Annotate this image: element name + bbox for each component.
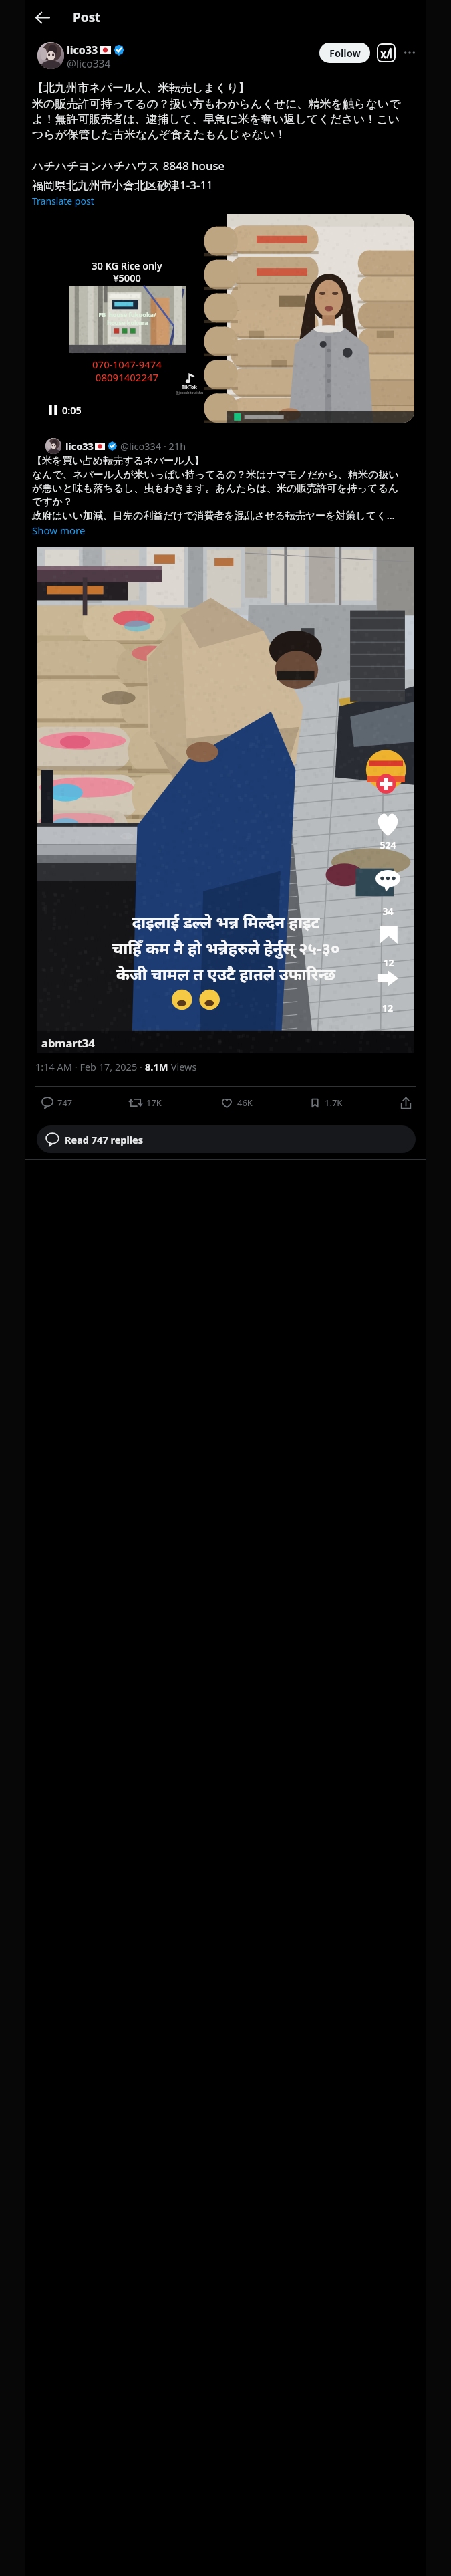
staticText: 070-1047-9474	[60, 358, 194, 371]
staticText: 524	[365, 839, 411, 851]
button[interactable]: Share	[393, 1090, 418, 1115]
staticText: 34	[365, 905, 411, 918]
button[interactable]: Reply	[39, 1090, 76, 1115]
button[interactable]: Back	[27, 3, 57, 32]
staticText: ¥5000	[60, 271, 194, 284]
staticText: Follow	[329, 46, 361, 60]
staticText: 17K	[146, 1097, 162, 1109]
button[interactable]: Like	[218, 1090, 255, 1115]
staticText: abmart34	[41, 1035, 95, 1050]
button[interactable]: Follow	[319, 43, 370, 63]
button[interactable]: More options	[401, 44, 418, 62]
staticText: Translate post	[32, 195, 94, 207]
button[interactable]: Repost	[126, 1090, 164, 1115]
staticText: 30 KG Rice only	[60, 259, 194, 272]
staticText: 【北九州市ネパール人、米転売しまくり】 米の販売許可持ってるの？扱い方もわからん…	[32, 81, 406, 142]
button[interactable]: Post image	[37, 547, 414, 1053]
staticText: FB house fukuoka/	[98, 310, 156, 318]
button[interactable]: Profile photo	[45, 438, 61, 454]
staticText: Read 747 replies	[65, 1133, 144, 1146]
button[interactable]: Read 747 replies	[37, 1125, 416, 1153]
staticText: 12	[368, 956, 409, 969]
staticText: Show more	[32, 524, 86, 537]
staticText: 46K	[237, 1097, 253, 1109]
staticText: 08091402247	[60, 370, 194, 384]
staticText: दाइलाई डल्ले भन्न मिल्दैन हाइट चाहिँ कम …	[47, 911, 405, 985]
button[interactable]: Grok	[377, 43, 396, 62]
staticText: 0:05	[62, 403, 82, 417]
button[interactable]: Bookmark	[307, 1090, 345, 1115]
staticText: 747	[57, 1097, 73, 1109]
button[interactable]: Profile photo	[37, 42, 64, 69]
staticText: Views	[168, 1060, 197, 1073]
staticText: @lico334 · 21h	[120, 439, 186, 453]
button[interactable]: Translate post	[32, 195, 94, 207]
staticText: 8.1M	[145, 1060, 168, 1073]
staticText: 1:14 AM · Feb 17, 2025 ·	[35, 1060, 145, 1073]
button[interactable]: Video	[37, 214, 414, 423]
staticText: lico33	[67, 43, 98, 58]
staticText: Post	[73, 9, 101, 26]
staticText: @lico334	[67, 56, 111, 70]
staticText: @jbooshitotaishu	[176, 391, 203, 395]
staticText: house kokura	[107, 318, 148, 326]
staticText: lico33	[65, 439, 94, 453]
staticText: 12	[365, 1002, 410, 1014]
staticText: 【米を買い占め転売するネパール人】 なんで、ネパール人が米いっぱい持ってるの？米…	[32, 455, 405, 522]
staticText: TikTok	[182, 384, 197, 391]
button[interactable]: Show more	[32, 524, 86, 537]
staticText: ハチハチヨンハチハウス 8848 house 福岡県北九州市小倉北区砂津1-3-…	[32, 158, 225, 193]
staticText: 1.7K	[325, 1097, 343, 1109]
